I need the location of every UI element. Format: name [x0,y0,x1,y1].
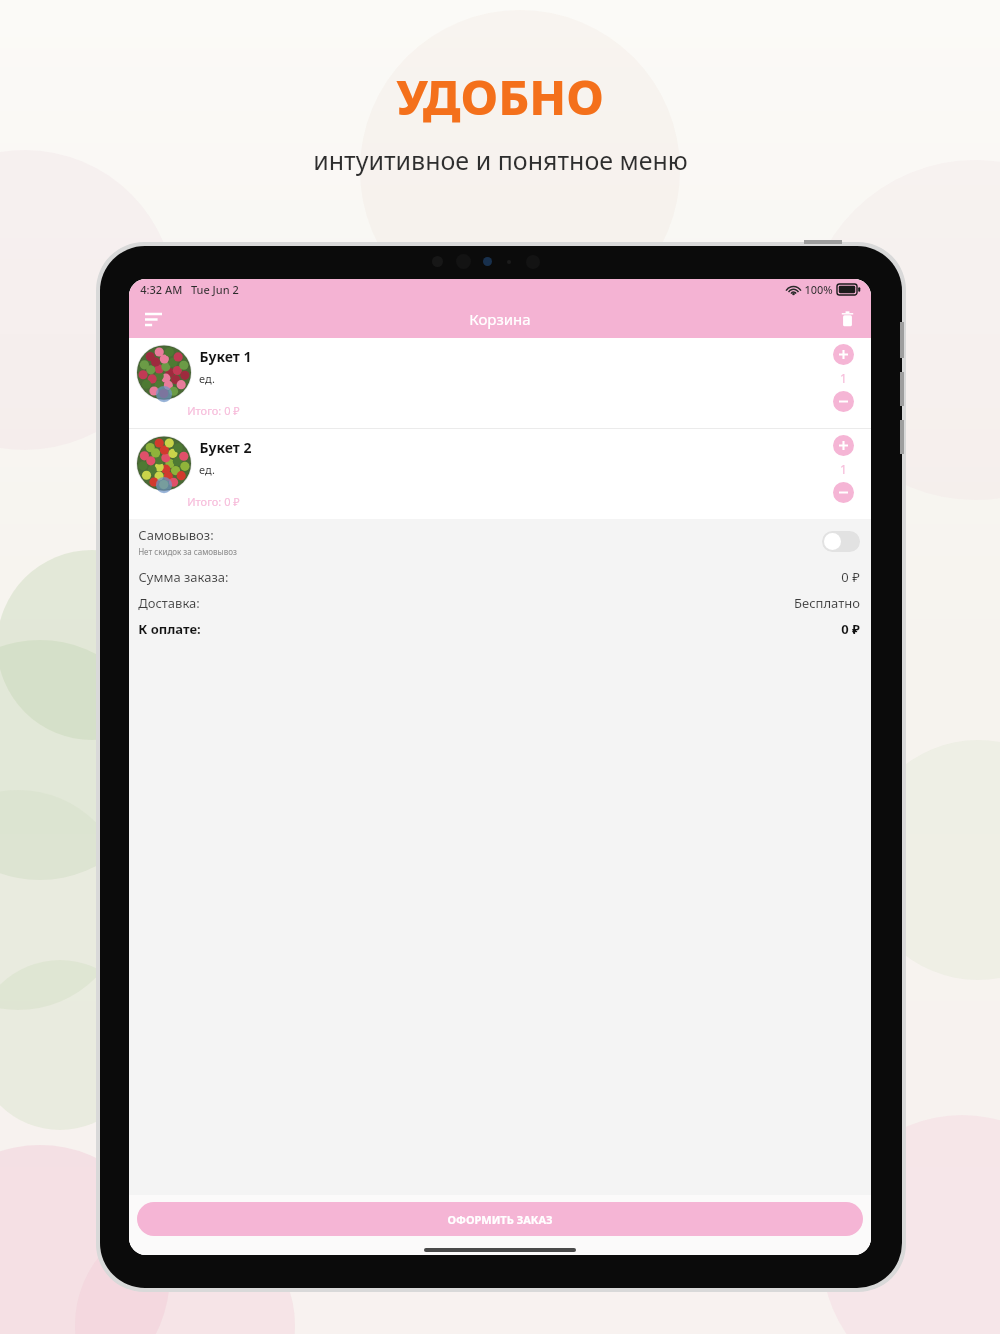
staticText: Итого: 0 ₽ [187,403,240,418]
staticText: УДОБНО [396,64,604,129]
button[interactable]: Clear cart [831,303,863,335]
button[interactable]: Decrease quantity [833,391,854,412]
staticText: 1 [840,370,847,386]
staticText: ед. [199,371,215,386]
button[interactable]: Букет 2 [129,429,871,519]
staticText: 4:32 AM Tue Jun 2 [140,282,239,297]
staticText: 1 [840,461,847,477]
button[interactable]: Decrease quantity [833,482,854,503]
staticText: 0 ₽ [841,568,860,586]
button[interactable]: Сумма заказа: [129,564,871,590]
button[interactable]: Increase quantity [833,435,854,456]
button[interactable]: Букет 1 [129,338,871,428]
staticText: Корзина [469,309,531,329]
staticText: интуитивное и понятное меню [313,143,688,177]
staticText: Доставка: [138,594,200,612]
staticText: Сумма заказа: [138,568,229,586]
staticText: Бесплатно [794,594,860,612]
button[interactable]: Доставка: [129,590,871,616]
staticText: ОФОРМИТЬ ЗАКАЗ [447,1212,553,1227]
button[interactable]: Increase quantity [833,344,854,365]
staticText: Нет скидок за самовывоз [138,546,237,557]
staticText: 0 ₽ [841,620,860,638]
staticText: К оплате: [138,620,201,638]
button[interactable]: ОФОРМИТЬ ЗАКАЗ [137,1202,863,1236]
staticText: 100% [804,282,833,297]
staticText: Самовывоз: [138,526,214,544]
button[interactable]: Самовывоз: [129,519,871,564]
button[interactable]: Menu [137,303,169,335]
staticText: Итого: 0 ₽ [187,494,240,509]
staticText: ед. [199,462,215,477]
staticText: Букет 1 [199,347,252,366]
staticText: Букет 2 [199,438,252,457]
button[interactable]: К оплате: [129,616,871,642]
